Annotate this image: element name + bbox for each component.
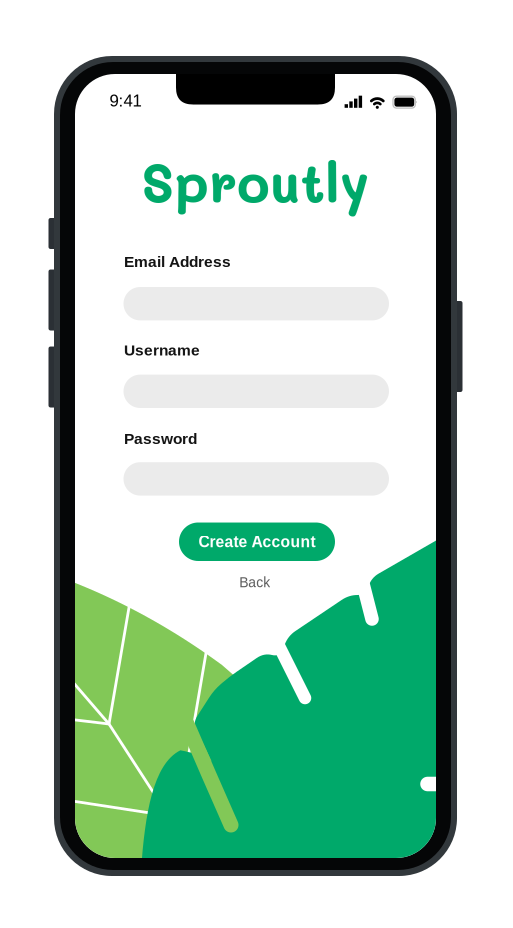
button[interactable]: Password (123, 462, 389, 496)
button[interactable]: Back (210, 571, 300, 593)
staticText: Password (124, 430, 197, 447)
staticText: 9:41 (110, 91, 142, 110)
staticText: Username (124, 342, 200, 359)
staticText: Sproutly (141, 146, 369, 216)
staticText: Create Account (198, 533, 315, 550)
staticText: Email Address (124, 253, 231, 270)
button[interactable]: Create Account (179, 522, 335, 561)
staticText: Back (239, 575, 270, 590)
